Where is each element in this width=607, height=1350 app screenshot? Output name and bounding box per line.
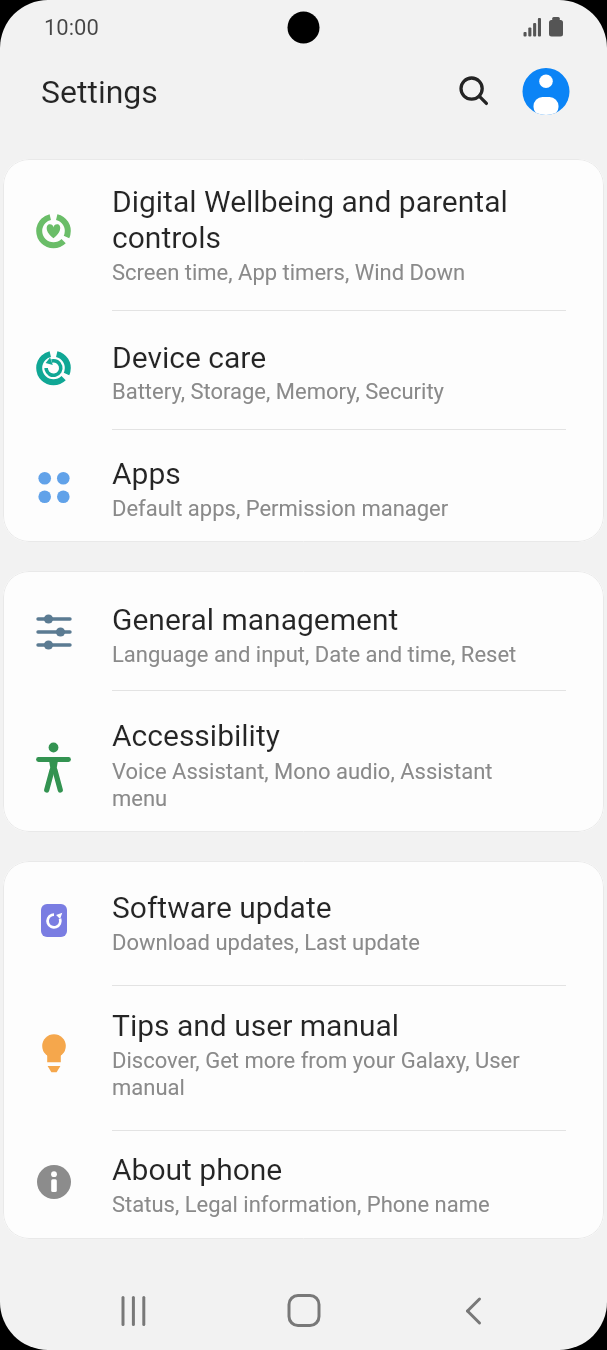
- button[interactable]: [3, 985, 604, 1130]
- button[interactable]: [434, 1280, 514, 1342]
- staticText: Device care: [112, 340, 267, 375]
- staticText: Status, Legal information, Phone name: [112, 1192, 490, 1218]
- button[interactable]: [3, 571, 604, 690]
- button[interactable]: [96, 1280, 176, 1342]
- staticText: Settings: [41, 73, 158, 111]
- staticText: Software update: [112, 890, 332, 925]
- staticText: manual: [112, 1075, 185, 1101]
- staticText: Voice Assistant, Mono audio, Assistant: [112, 759, 493, 785]
- staticText: General management: [112, 602, 399, 637]
- staticText: Default apps, Permission manager: [112, 496, 449, 522]
- button[interactable]: [3, 690, 604, 832]
- staticText: Battery, Storage, Memory, Security: [112, 379, 445, 405]
- button[interactable]: [522, 67, 570, 115]
- staticText: Discover, Get more from your Galaxy, Use…: [112, 1048, 520, 1074]
- staticText: Apps: [112, 456, 181, 491]
- button[interactable]: [3, 159, 604, 310]
- button[interactable]: [3, 429, 604, 542]
- staticText: 10:00: [44, 15, 99, 41]
- button[interactable]: [3, 310, 604, 429]
- staticText: menu: [112, 786, 168, 812]
- button[interactable]: [264, 1280, 344, 1342]
- staticText: controls: [112, 220, 221, 255]
- staticText: About phone: [112, 1152, 283, 1187]
- staticText: Accessibility: [112, 718, 280, 753]
- button[interactable]: [3, 861, 604, 985]
- staticText: Tips and user manual: [112, 1008, 400, 1043]
- staticText: Screen time, App timers, Wind Down: [112, 260, 466, 286]
- staticText: Digital Wellbeing and parental: [112, 184, 508, 219]
- staticText: Language and input, Date and time, Reset: [112, 642, 517, 668]
- staticText: Download updates, Last update: [112, 930, 420, 956]
- button[interactable]: [448, 66, 496, 114]
- button[interactable]: [3, 1130, 604, 1239]
